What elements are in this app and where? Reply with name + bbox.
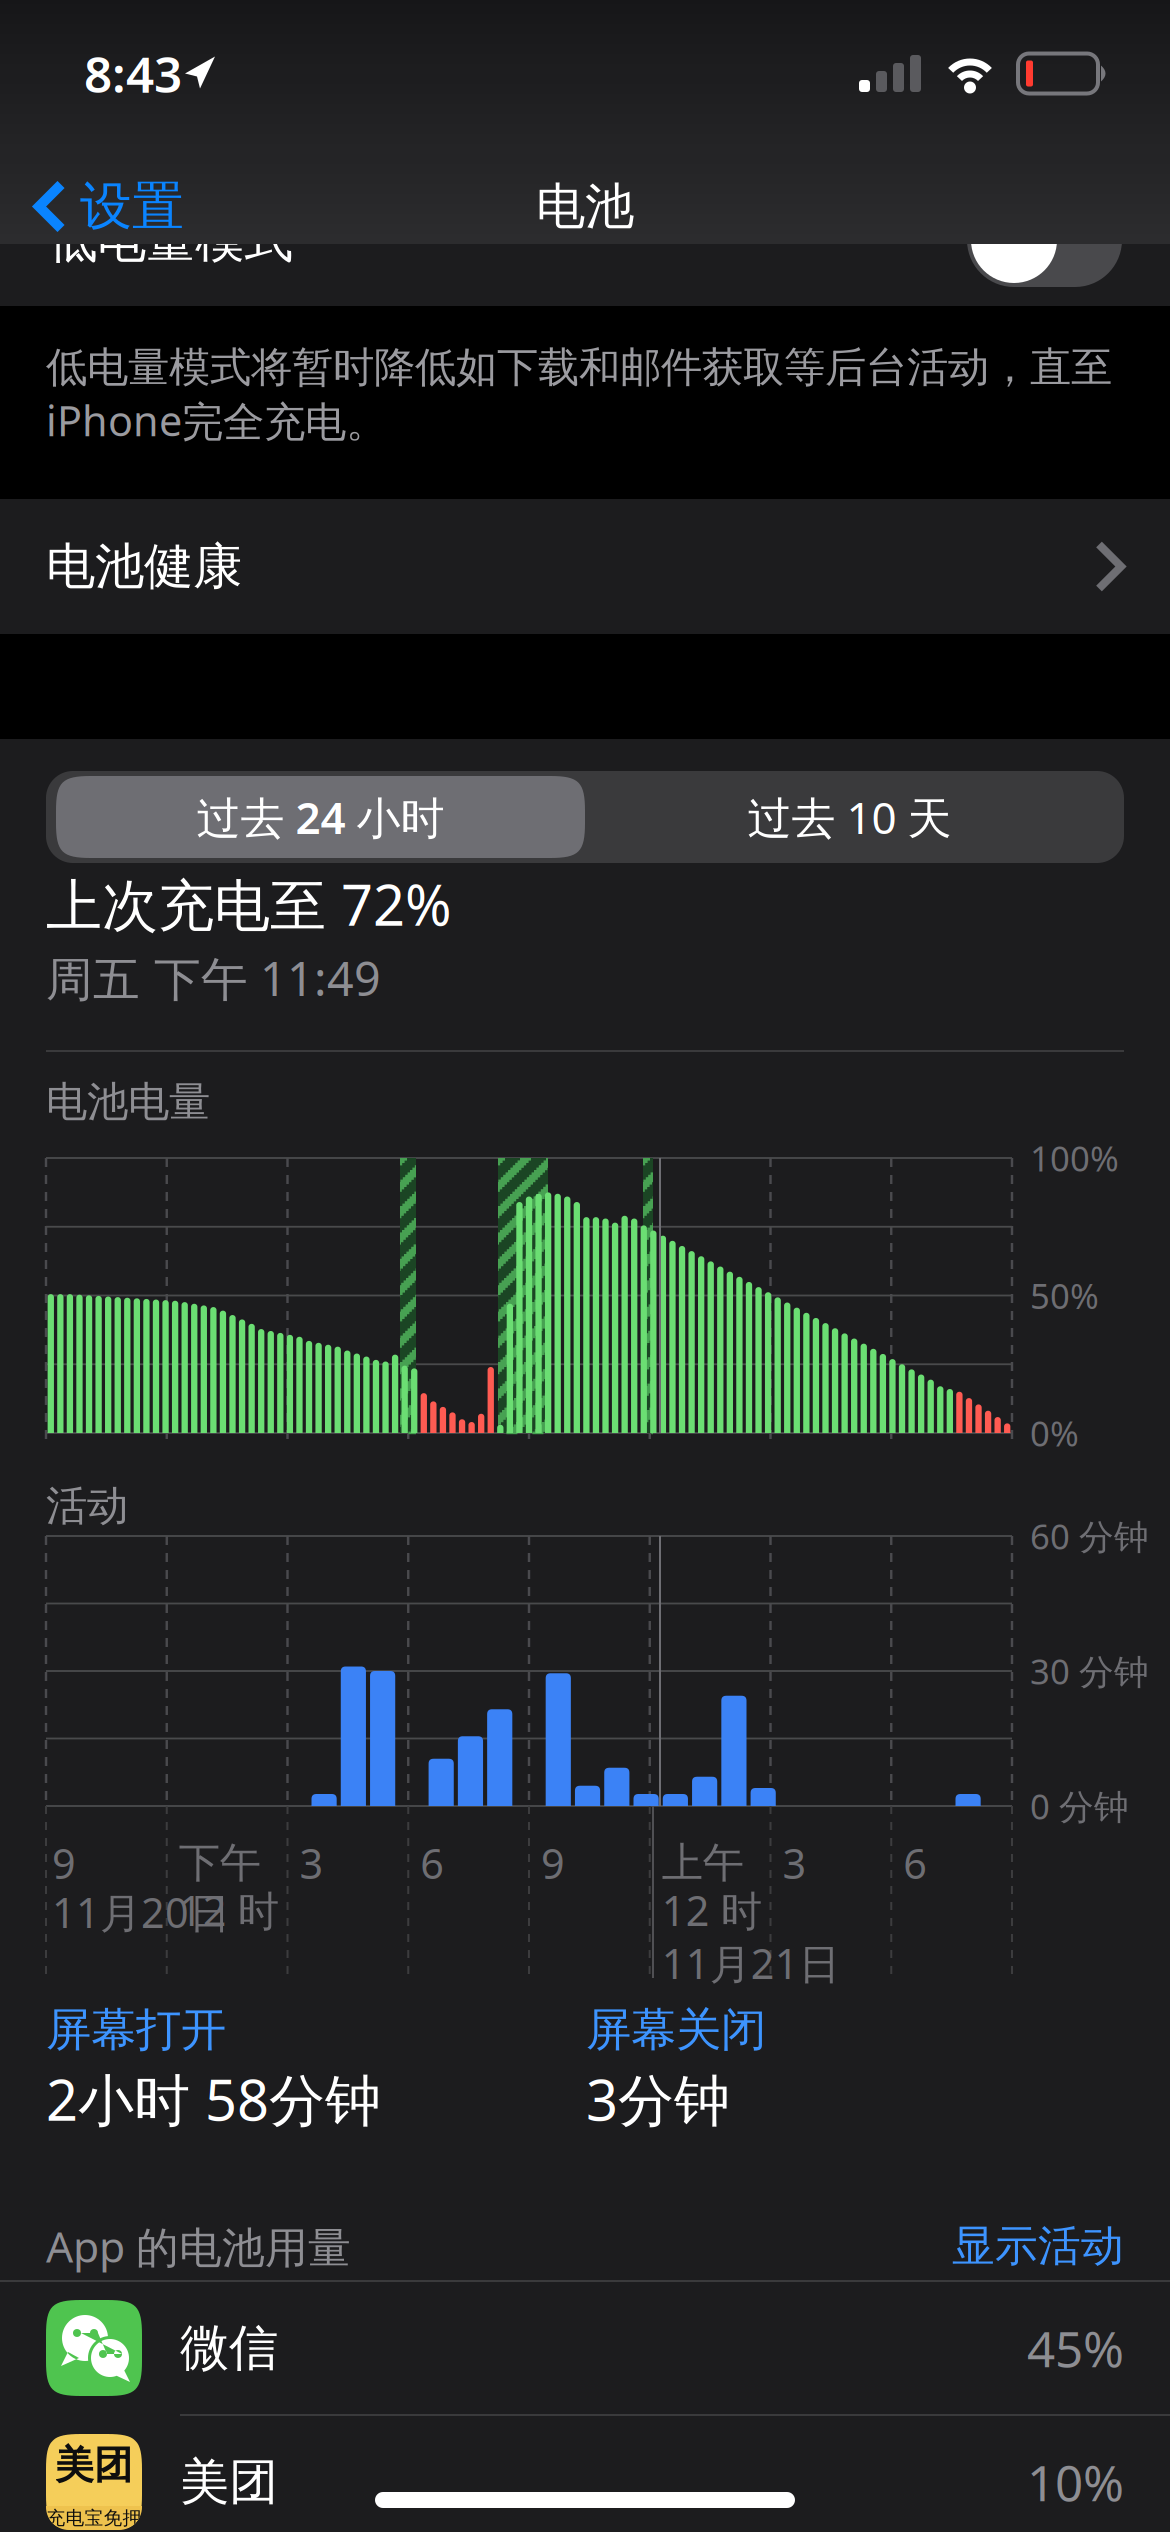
staticText: 微信 — [180, 2318, 278, 2378]
staticText: 60 分钟 — [1030, 1513, 1149, 1559]
staticText: 下午 — [179, 1838, 261, 1888]
staticText: 9 — [52, 1836, 76, 1890]
staticText: 电池 — [536, 176, 634, 237]
staticText: 6 — [903, 1836, 927, 1890]
staticText: 设置 — [80, 175, 184, 238]
button[interactable]: 美团 — [0, 2416, 1170, 2532]
staticText: 电池健康 — [46, 536, 242, 597]
staticText: App 的电池用量 — [46, 2218, 351, 2274]
staticText: 12 时 — [179, 1883, 279, 1937]
staticText: 3分钟 — [586, 2062, 730, 2136]
staticText: 2小时 58分钟 — [46, 2062, 381, 2136]
staticText: 11月21日 — [662, 1936, 840, 1990]
staticText: 45% — [1027, 2315, 1124, 2381]
staticText: 过去 10 天 — [747, 788, 951, 846]
staticText: 显示活动 — [952, 2220, 1124, 2272]
button[interactable]: 低电量模式 — [0, 174, 1170, 306]
button[interactable]: 显示活动 — [952, 2218, 1124, 2274]
button[interactable]: 电池健康 — [0, 499, 1170, 634]
staticText: 10% — [1027, 2449, 1124, 2515]
staticText: 上次充电至 72% — [46, 867, 452, 941]
staticText: 0 分钟 — [1030, 1783, 1129, 1829]
staticText: 3 — [299, 1836, 323, 1890]
staticText: 活动 — [46, 1481, 128, 1531]
button[interactable]: 微信 — [0, 2282, 1170, 2414]
staticText: 50% — [1030, 1272, 1099, 1318]
staticText: 屏幕关闭 — [586, 2002, 766, 2058]
staticText: 3 — [782, 1836, 806, 1890]
staticText: 0% — [1030, 1410, 1079, 1456]
staticText: 8:43 — [84, 41, 182, 106]
button[interactable]: 过去 10 天 — [585, 776, 1114, 858]
staticText: 6 — [420, 1836, 444, 1890]
staticText: 100% — [1030, 1135, 1119, 1181]
staticText: 上午 — [662, 1838, 744, 1888]
staticText: 充电宝免押 — [46, 2506, 141, 2529]
button[interactable]: 过去 24 小时 — [56, 776, 585, 858]
staticText: 30 分钟 — [1030, 1648, 1149, 1694]
staticText: 9 — [541, 1836, 565, 1890]
staticText: 12 时 — [662, 1883, 762, 1937]
button[interactable]: 设置 — [0, 144, 204, 269]
staticText: 美团 — [55, 2441, 133, 2489]
staticText: 美团 — [180, 2452, 278, 2512]
staticText: 低电量模式将暂时降低如下载和邮件获取等后台活动，直至 iPhone完全充电。 — [46, 342, 1112, 448]
staticText: 过去 24 小时 — [196, 788, 444, 846]
staticText: 屏幕打开 — [46, 2002, 226, 2058]
staticText: 低电量模式 — [48, 210, 293, 270]
staticText: 电池电量 — [46, 1077, 210, 1127]
staticText: 周五 下午 11:49 — [46, 947, 381, 1009]
staticText: 11月20日 — [52, 1885, 230, 1939]
